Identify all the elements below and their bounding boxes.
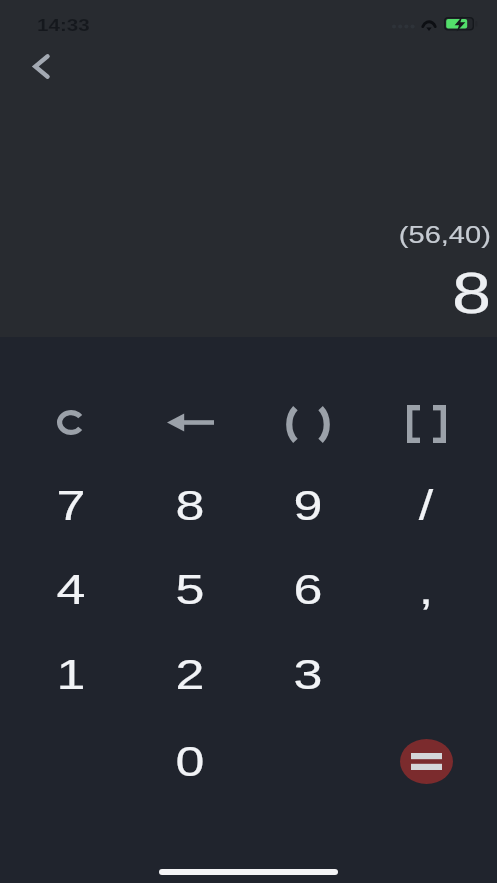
staticText: 1: [56, 650, 85, 698]
staticText: 7: [56, 481, 85, 529]
button[interactable]: 9: [249, 463, 367, 547]
button[interactable]: Backspace: [131, 380, 249, 464]
staticText: /: [419, 481, 433, 529]
button[interactable]: 2: [131, 632, 249, 716]
button[interactable]: 0: [131, 719, 249, 803]
button[interactable]: Comma: [367, 547, 485, 631]
staticText: 8: [452, 260, 492, 325]
staticText: 5: [175, 565, 204, 613]
button[interactable]: Divide: [367, 463, 485, 547]
staticText: ,: [419, 565, 433, 613]
button[interactable]: Brackets: [367, 382, 485, 466]
button[interactable]: Clear: [12, 380, 130, 464]
staticText: 6: [293, 565, 322, 613]
staticText: 2: [175, 650, 204, 698]
button[interactable]: 3: [249, 632, 367, 716]
button[interactable]: 1: [12, 632, 130, 716]
button[interactable]: 7: [12, 463, 130, 547]
staticText: 3: [293, 650, 322, 698]
button[interactable]: Equals: [400, 739, 453, 784]
button[interactable]: Parentheses: [249, 382, 367, 466]
staticText: (56,40): [399, 221, 492, 248]
button[interactable]: 4: [12, 547, 130, 631]
staticText: 4: [56, 565, 85, 613]
button[interactable]: 6: [249, 547, 367, 631]
staticText: 14:33: [37, 16, 90, 35]
staticText: 8: [175, 481, 204, 529]
button[interactable]: 5: [131, 547, 249, 631]
button[interactable]: 8: [131, 463, 249, 547]
button[interactable]: Back: [17, 42, 65, 90]
staticText: 9: [293, 481, 322, 529]
staticText: 0: [175, 737, 204, 785]
